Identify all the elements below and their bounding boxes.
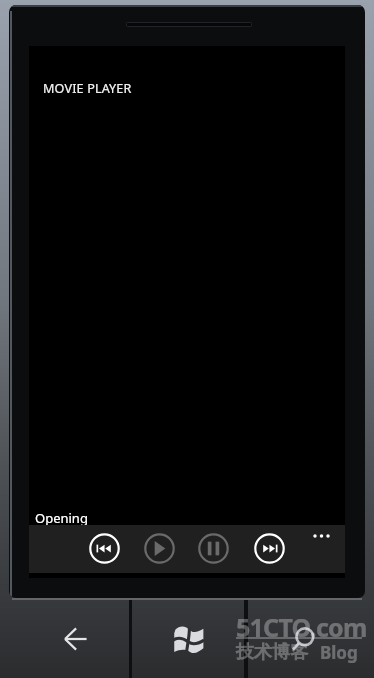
staticText: 51CTO.com — [236, 610, 367, 644]
button[interactable]: Back — [0, 600, 129, 678]
button[interactable]: Next — [254, 533, 285, 564]
button[interactable]: Play — [144, 533, 175, 564]
button[interactable]: Previous — [89, 533, 120, 564]
staticText: 技术博客 — [236, 641, 308, 664]
button[interactable]: Search — [248, 600, 374, 678]
staticText: Opening — [35, 509, 88, 527]
staticText: Blog — [320, 641, 358, 664]
staticText: MOVIE PLAYER — [43, 80, 132, 97]
button[interactable]: More options — [305, 526, 338, 546]
button[interactable]: Start — [132, 600, 244, 678]
button[interactable]: Pause — [198, 533, 229, 564]
